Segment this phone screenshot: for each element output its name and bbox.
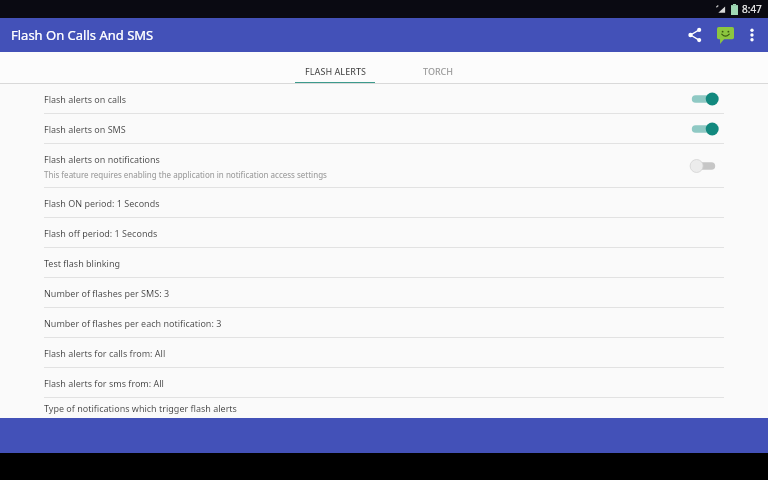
staticText: Flash alerts for sms from: All	[44, 377, 164, 389]
button[interactable]: Flash alerts on SMS	[0, 114, 768, 144]
button[interactable]: SMS	[710, 20, 740, 50]
button[interactable]: Flash ON period: 1 Seconds	[0, 188, 768, 218]
button[interactable]: Test flash blinking	[0, 248, 768, 278]
button[interactable]: Type of notifications which trigger flas…	[0, 398, 768, 418]
staticText: Flash alerts on calls	[44, 93, 126, 105]
staticText: Test flash blinking	[44, 257, 120, 269]
staticText: 8:47	[742, 2, 762, 16]
button[interactable]: Flash alerts on SMS	[690, 119, 724, 139]
staticText: Flash On Calls And SMS	[11, 26, 154, 44]
staticText: Flash alerts for calls from: All	[44, 347, 166, 359]
button[interactable]: TORCH	[403, 52, 473, 84]
staticText: Number of flashes per each notification:…	[44, 317, 222, 329]
button[interactable]: Flash alerts on calls	[0, 84, 768, 114]
staticText: Flash off period: 1 Seconds	[44, 227, 158, 239]
button[interactable]: FLASH ALERTS	[295, 52, 375, 84]
button[interactable]: Share	[680, 20, 710, 50]
button[interactable]: Flash alerts for calls from: All	[0, 338, 768, 368]
button[interactable]: Number of flashes per SMS: 3	[0, 278, 768, 308]
button[interactable]: Flash alerts on notifications	[0, 144, 768, 188]
button[interactable]: Flash off period: 1 Seconds	[0, 218, 768, 248]
button[interactable]: More options	[740, 20, 764, 50]
staticText: Flash ON period: 1 Seconds	[44, 197, 160, 209]
button[interactable]: Number of flashes per each notification:…	[0, 308, 768, 338]
staticText: Number of flashes per SMS: 3	[44, 287, 170, 299]
staticText: Flash alerts on SMS	[44, 123, 126, 135]
staticText: This feature requires enabling the appli…	[44, 169, 327, 180]
staticText: TORCH	[423, 65, 454, 77]
button[interactable]: Flash alerts for sms from: All	[0, 368, 768, 398]
staticText: Flash alerts on notifications	[44, 153, 160, 165]
staticText: Type of notifications which trigger flas…	[44, 402, 237, 414]
button[interactable]: Flash alerts on notifications	[690, 156, 724, 176]
button[interactable]: Flash alerts on calls	[690, 89, 724, 109]
staticText: FLASH ALERTS	[305, 65, 366, 77]
